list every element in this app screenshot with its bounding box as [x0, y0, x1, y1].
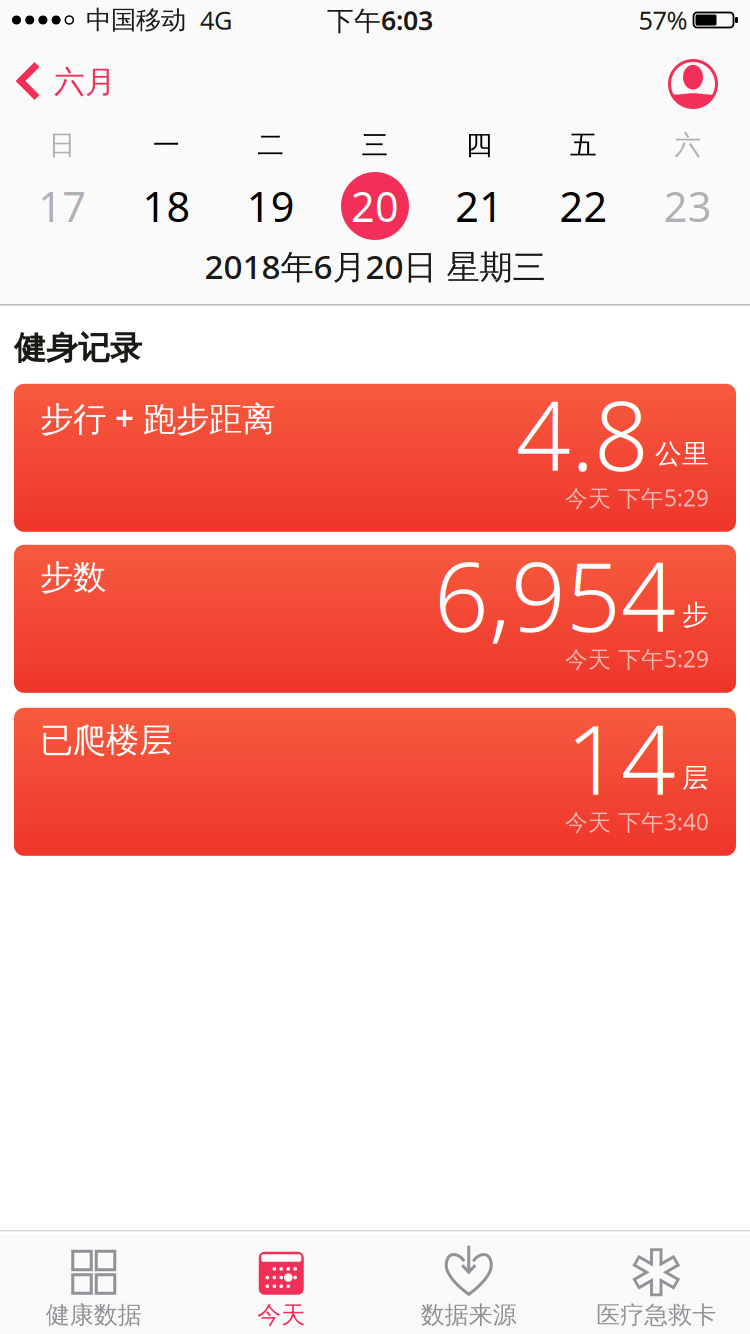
staticText: 医疗急救卡 [596, 1300, 716, 1330]
staticText: 18 [142, 179, 190, 233]
staticText: 健康数据 [46, 1300, 142, 1330]
staticText: 今天 下午5:29 [565, 483, 709, 513]
staticText: 4.8 [516, 370, 649, 497]
staticText: 健身记录 [14, 328, 142, 368]
staticText: 二 [257, 129, 284, 161]
staticText: 步行 + 跑步距离 [40, 396, 275, 440]
staticText: 日 [49, 129, 76, 161]
staticText: 中国移动 [86, 4, 186, 35]
staticText: 六 [674, 129, 701, 161]
staticText: 步数 [40, 557, 106, 598]
staticText: 已爬楼层 [40, 720, 172, 761]
staticText: 六月 [54, 63, 116, 101]
staticText: 19 [247, 179, 295, 233]
staticText: 57% [638, 3, 687, 37]
staticText: 今天 [257, 1300, 305, 1330]
staticText: 21 [455, 179, 503, 233]
staticText: 20 [351, 179, 399, 233]
staticText: 步 [682, 598, 709, 631]
staticText: 17 [38, 179, 86, 233]
staticText: 三 [361, 129, 388, 161]
staticText: 23 [664, 179, 712, 233]
staticText: 五 [570, 129, 597, 161]
staticText: 公里 [655, 437, 709, 470]
staticText: 4G [200, 3, 232, 37]
staticText: 今天 下午5:29 [565, 644, 709, 674]
staticText: 四 [466, 129, 493, 161]
staticText: 14 [566, 694, 676, 821]
staticText: 6,954 [434, 531, 676, 658]
staticText: 层 [682, 761, 709, 794]
staticText: 数据来源 [421, 1300, 517, 1330]
staticText: 22 [560, 179, 608, 233]
staticText: 2018年6月20日 星期三 [204, 244, 545, 288]
staticText: 一 [153, 129, 180, 161]
staticText: 今天 下午3:40 [565, 807, 709, 837]
staticText: 下午6:03 [327, 2, 433, 38]
